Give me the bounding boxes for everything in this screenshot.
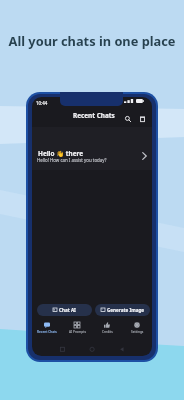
- staticText: Recent Chats: [37, 330, 57, 334]
- button[interactable]: AI Prompts: [62, 318, 92, 340]
- button[interactable]: Chat AI: [37, 304, 92, 316]
- button[interactable]: Delete all chats: [137, 113, 148, 124]
- staticText: Generate Image: [107, 307, 145, 313]
- button[interactable]: Settings: [122, 318, 152, 340]
- staticText: Recent Chats: [73, 111, 115, 120]
- button[interactable]: Hello 👋 there: [32, 127, 152, 170]
- staticText: Hello! How can I assist you today?: [37, 157, 107, 163]
- button[interactable]: Search: [122, 113, 133, 124]
- staticText: 10:44: [36, 100, 48, 106]
- button[interactable]: Recent Chats: [32, 318, 62, 340]
- staticText: Settings: [131, 330, 144, 334]
- staticText: AI Prompts: [69, 330, 86, 334]
- staticText: Chat AI: [59, 307, 76, 313]
- staticText: Credits: [102, 330, 113, 334]
- staticText: All your chats in one place: [0, 32, 184, 49]
- staticText: Hello 👋 there: [38, 149, 84, 158]
- button[interactable]: Credits: [92, 318, 122, 340]
- button[interactable]: Generate Image: [95, 304, 150, 316]
